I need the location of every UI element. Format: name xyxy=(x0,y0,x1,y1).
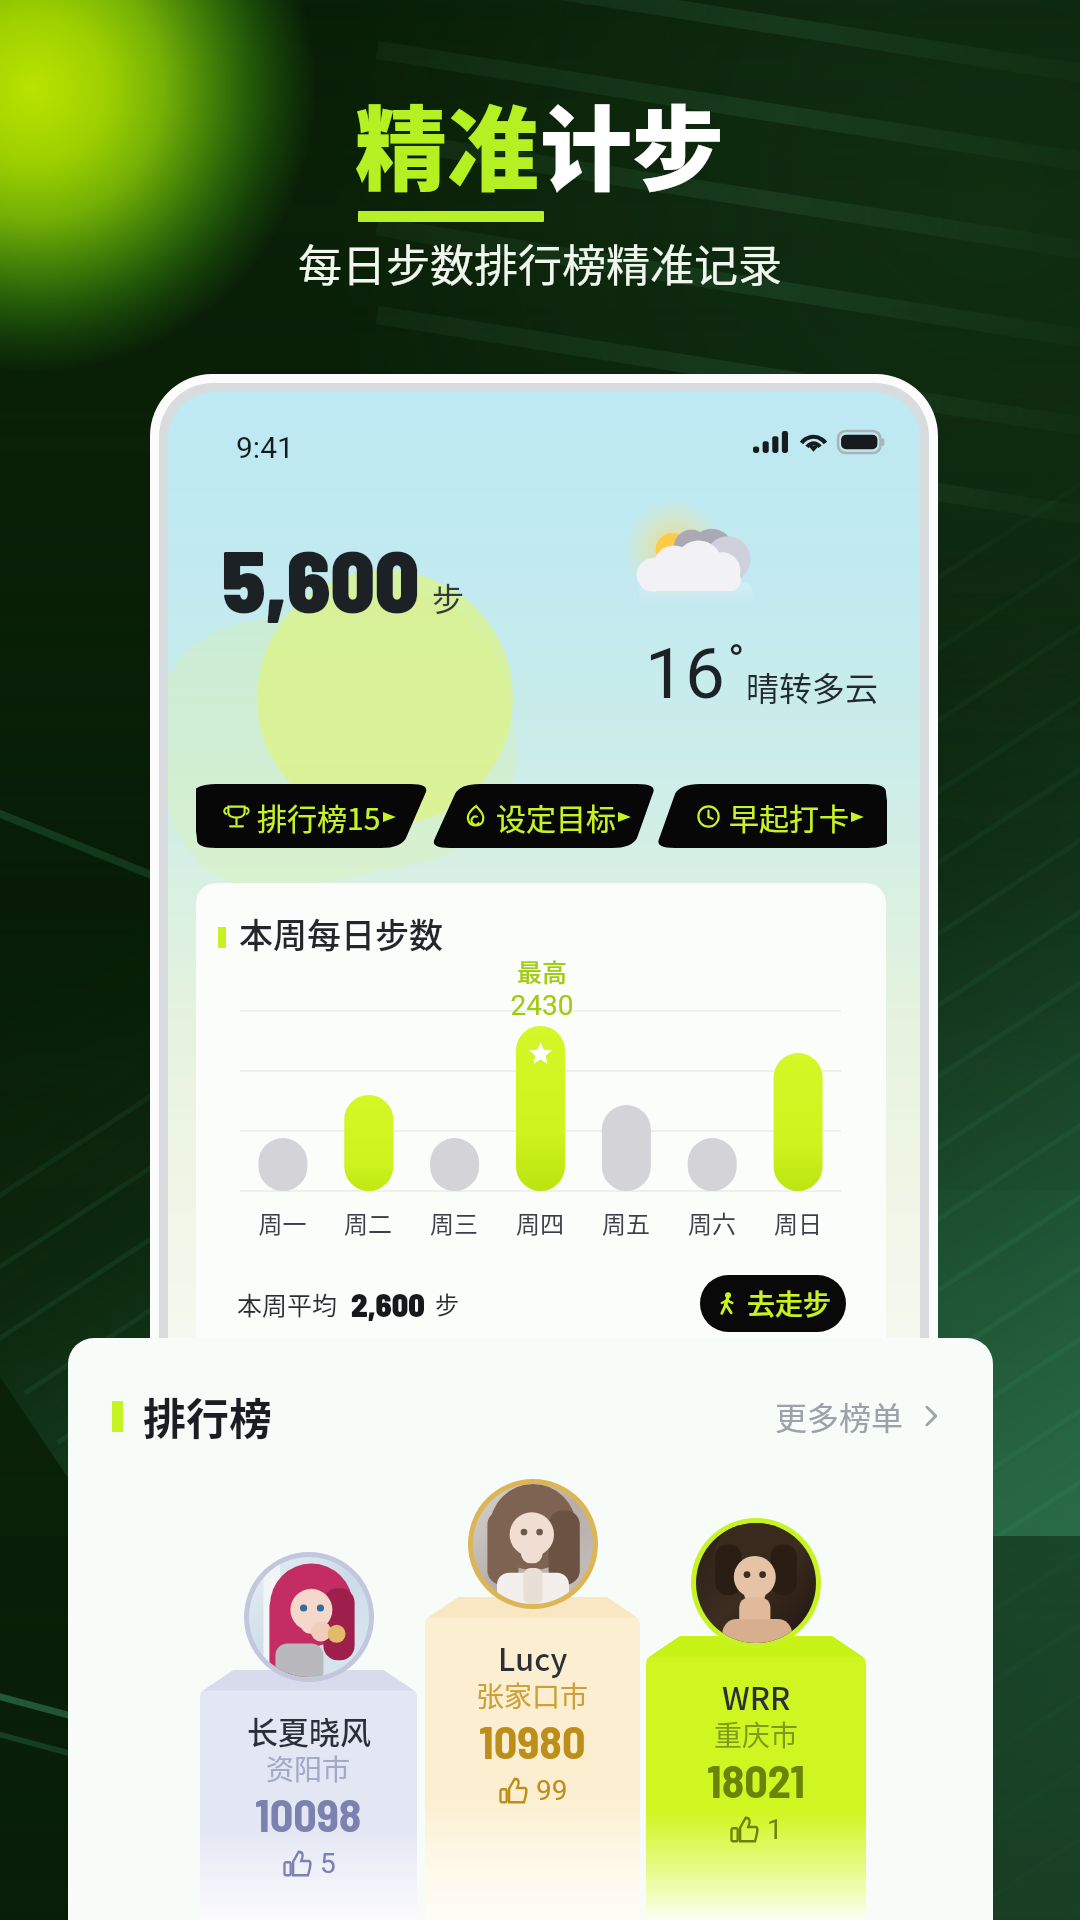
staticText: 张家口市 xyxy=(476,1675,589,1716)
staticText: 99 xyxy=(536,1774,568,1807)
button[interactable]: 长夏晓风 xyxy=(200,1670,417,1920)
other: Cellular signal xyxy=(753,431,788,453)
staticText: 最高 xyxy=(492,953,592,989)
staticText: 周三 xyxy=(411,1205,497,1240)
staticText: 9:41 xyxy=(236,430,294,465)
button[interactable]: 早起打卡 xyxy=(655,784,887,848)
staticText: 去走步 xyxy=(747,1283,832,1324)
staticText: 精准 xyxy=(355,76,540,209)
staticText: 长夏晓风 xyxy=(247,1708,371,1753)
button[interactable]: 去走步 xyxy=(700,1275,846,1332)
button[interactable]: 更多榜单 xyxy=(775,1393,946,1439)
staticText: 18021 xyxy=(707,1752,805,1807)
staticText: 设定目标 xyxy=(496,795,616,838)
staticText: 计步 xyxy=(540,76,725,209)
staticText: 本周每日步数 xyxy=(239,909,443,958)
staticText: 本周平均 xyxy=(237,1286,338,1322)
staticText: 更多榜单 xyxy=(775,1393,904,1439)
staticText: Lucy xyxy=(498,1635,568,1680)
button[interactable]: 设定目标 xyxy=(430,784,657,848)
staticText: 资阳市 xyxy=(266,1748,351,1789)
button[interactable]: 排行榜15 xyxy=(196,784,430,848)
staticText: 步 xyxy=(435,1286,459,1321)
staticText: 早起打卡 xyxy=(729,795,849,838)
staticText: 周日 xyxy=(755,1205,841,1240)
staticText: 周五 xyxy=(583,1205,669,1240)
staticText: 10098 xyxy=(255,1786,362,1841)
staticText: 2430 xyxy=(492,989,592,1022)
staticText: 5 xyxy=(320,1847,336,1880)
staticText: 排行榜 xyxy=(143,1385,272,1447)
staticText: 步 xyxy=(432,574,465,620)
staticText: 周一 xyxy=(240,1205,325,1240)
staticText: 排行榜15 xyxy=(257,795,381,838)
staticText: 1 xyxy=(767,1813,783,1846)
staticText: 10980 xyxy=(479,1713,586,1768)
staticText: WRR xyxy=(722,1674,791,1719)
staticText: ° xyxy=(728,635,745,687)
staticText: 每日步数排行榜精准记录 xyxy=(298,231,782,295)
staticText: 2,600 xyxy=(351,1285,425,1323)
staticText: 5,600 xyxy=(222,527,420,630)
button[interactable]: WRR xyxy=(646,1636,866,1920)
staticText: 周二 xyxy=(325,1205,411,1240)
other: Battery xyxy=(838,431,886,453)
staticText: 16 xyxy=(645,632,725,715)
other: Wi-Fi xyxy=(798,431,829,452)
staticText: 周六 xyxy=(669,1205,755,1240)
staticText: 重庆市 xyxy=(714,1714,799,1755)
button[interactable]: Lucy xyxy=(425,1597,640,1920)
staticText: 晴转多云 xyxy=(746,663,878,711)
staticText: 周四 xyxy=(497,1205,583,1240)
